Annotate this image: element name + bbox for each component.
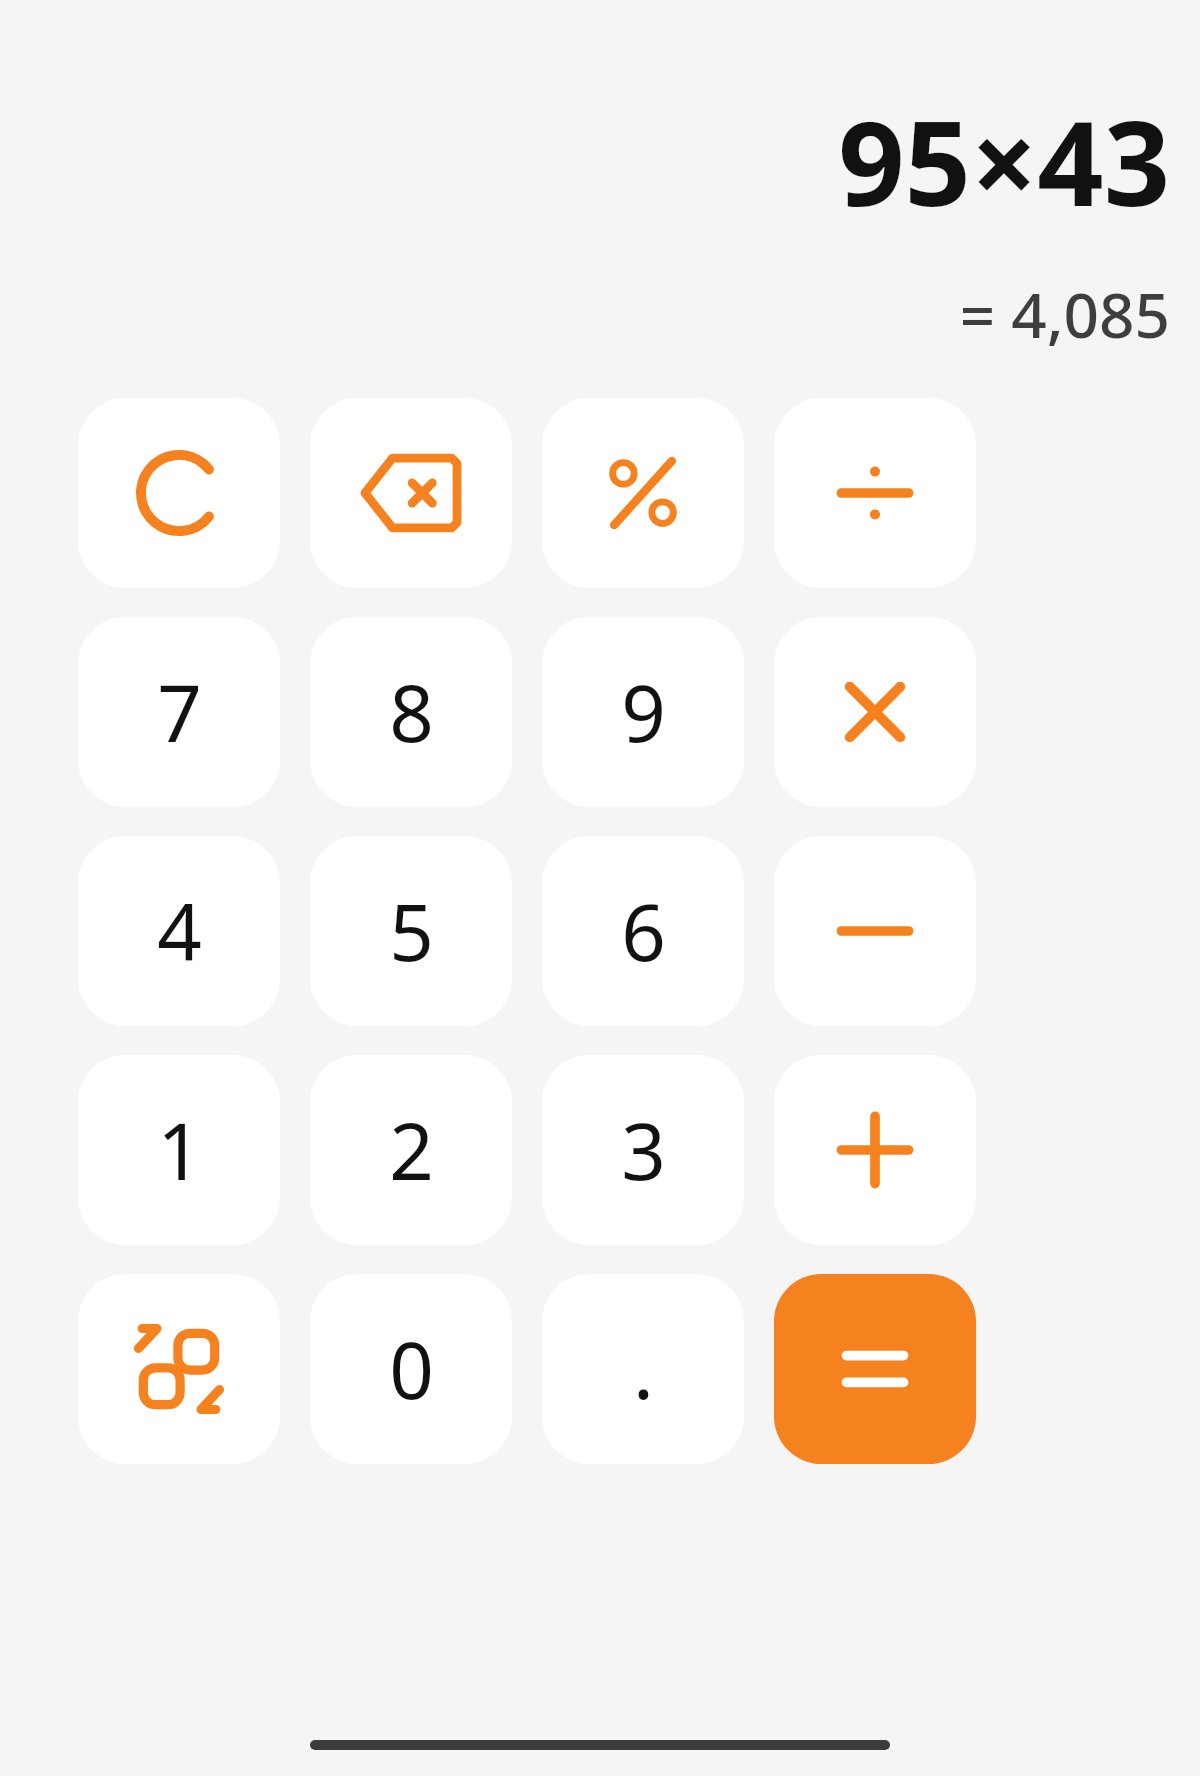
button[interactable]: 9	[542, 617, 744, 807]
staticText: = 4,085	[959, 272, 1170, 356]
button[interactable]: 6	[542, 836, 744, 1026]
button[interactable]: Divide	[774, 398, 976, 588]
staticText: 2	[389, 1097, 434, 1203]
staticText: 4	[157, 878, 202, 984]
button[interactable]: 3	[542, 1055, 744, 1245]
button[interactable]: 5	[310, 836, 512, 1026]
button[interactable]: Multiply	[774, 617, 976, 807]
button[interactable]: 7	[78, 617, 280, 807]
staticText: 3	[621, 1097, 666, 1203]
button[interactable]: Clear	[78, 398, 280, 588]
button[interactable]: Plus	[774, 1055, 976, 1245]
staticText: 6	[621, 878, 666, 984]
staticText: 1	[157, 1097, 202, 1203]
button[interactable]: Minus	[774, 836, 976, 1026]
staticText: 7	[157, 659, 202, 765]
staticText: 0	[389, 1316, 434, 1422]
button[interactable]: 1	[78, 1055, 280, 1245]
button[interactable]: 8	[310, 617, 512, 807]
staticText: 95×43	[838, 82, 1170, 240]
staticText: 8	[389, 659, 434, 765]
button[interactable]: 0	[310, 1274, 512, 1464]
button[interactable]: Unit converter	[78, 1274, 280, 1464]
button[interactable]: 2	[310, 1055, 512, 1245]
button[interactable]: Percent	[542, 398, 744, 588]
button[interactable]: Decimal point	[542, 1274, 744, 1464]
staticText: 5	[389, 878, 434, 984]
staticText: 9	[621, 659, 666, 765]
button[interactable]: 4	[78, 836, 280, 1026]
button[interactable]: Equals	[774, 1274, 976, 1464]
button[interactable]: Backspace	[310, 398, 512, 588]
staticText: .	[633, 1316, 654, 1422]
